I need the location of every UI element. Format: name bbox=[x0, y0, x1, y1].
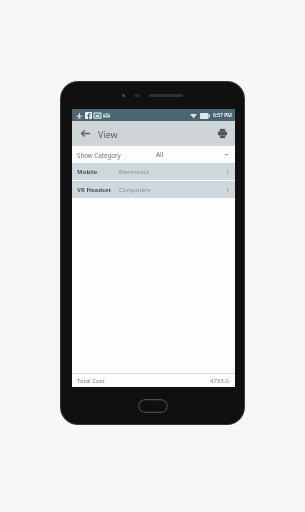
staticText: All bbox=[156, 150, 164, 159]
staticText: 1 bbox=[226, 186, 230, 194]
button[interactable]: VR Headset bbox=[72, 181, 235, 198]
staticText: Computers bbox=[119, 186, 151, 194]
staticText: 6:57 PM bbox=[213, 112, 232, 119]
staticText: View bbox=[98, 128, 118, 140]
button[interactable]: Print bbox=[209, 121, 235, 146]
button[interactable]: Mobile bbox=[72, 163, 235, 180]
staticText: 4733.0 bbox=[210, 377, 229, 385]
staticText: Total Cost bbox=[77, 377, 105, 385]
button[interactable]: Show Category bbox=[72, 146, 235, 163]
staticText: Electronics bbox=[119, 168, 150, 176]
button[interactable]: Back bbox=[72, 121, 98, 146]
staticText: VR Headset bbox=[77, 186, 112, 194]
other: Home bbox=[138, 399, 168, 413]
staticText: Show Category bbox=[77, 151, 121, 159]
staticText: Mobile bbox=[77, 168, 98, 176]
staticText: 1 bbox=[226, 168, 230, 176]
